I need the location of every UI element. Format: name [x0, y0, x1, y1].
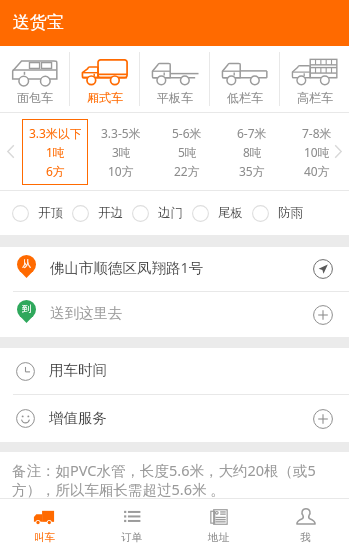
- staticText: 增值服务: [49, 409, 297, 427]
- button[interactable]: 叫车: [0, 499, 88, 550]
- button[interactable]: Previous sizes: [0, 113, 22, 190]
- button[interactable]: 厢式车: [70, 46, 139, 112]
- staticText: 低栏车: [227, 90, 263, 105]
- staticText: 8吨: [243, 144, 262, 160]
- staticText: 3吨: [112, 144, 131, 160]
- button[interactable]: 面包车: [0, 46, 69, 112]
- button[interactable]: Locate: [297, 247, 349, 291]
- staticText: 5-6米: [172, 125, 202, 141]
- button[interactable]: 低栏车: [210, 46, 279, 112]
- staticText: 开边: [98, 205, 123, 221]
- staticText: 尾板: [218, 205, 243, 221]
- staticText: 送货宝: [13, 12, 64, 33]
- button[interactable]: 开顶: [12, 191, 72, 235]
- button[interactable]: 6-7米: [219, 113, 284, 190]
- button[interactable]: 地址: [175, 499, 262, 550]
- staticText: 从: [22, 258, 32, 270]
- button[interactable]: 开边: [72, 191, 132, 235]
- button[interactable]: 3.3-5米: [88, 113, 154, 190]
- staticText: 厢式车: [87, 90, 123, 105]
- staticText: 5吨: [178, 144, 197, 160]
- button[interactable]: 用车时间: [0, 348, 349, 394]
- staticText: 防雨: [278, 205, 303, 221]
- button[interactable]: 高栏车: [280, 46, 349, 112]
- staticText: 35方: [239, 163, 265, 179]
- staticText: 地址: [208, 531, 229, 544]
- staticText: 边门: [158, 205, 183, 221]
- button[interactable]: 7-8米: [284, 113, 349, 190]
- staticText: 平板车: [157, 90, 193, 105]
- button[interactable]: Add destination: [297, 292, 349, 337]
- staticText: 6-7米: [237, 125, 267, 141]
- staticText: 送到这里去: [50, 304, 297, 322]
- staticText: 7-8米: [302, 125, 332, 141]
- staticText: 用车时间: [49, 361, 297, 379]
- button[interactable]: 5-6米: [154, 113, 219, 190]
- button[interactable]: 尾板: [192, 191, 252, 235]
- button[interactable]: 增值服务: [0, 395, 349, 442]
- staticText: 6方: [46, 163, 65, 179]
- staticText: 订单: [121, 531, 142, 544]
- button[interactable]: 3.3米以下: [22, 113, 88, 190]
- button[interactable]: 订单: [88, 499, 175, 550]
- staticText: 佛山市顺德区凤翔路1号: [50, 257, 297, 277]
- staticText: 备注：如PVC水管，长度5.6米，大约20根（或5方），所以车厢长需超过5.6米…: [12, 460, 338, 498]
- button[interactable]: 防雨: [252, 191, 312, 235]
- staticText: 开顶: [38, 205, 63, 221]
- button[interactable]: 边门: [132, 191, 192, 235]
- button[interactable]: Add service: [297, 395, 349, 442]
- staticText: 面包车: [17, 90, 53, 105]
- staticText: 3.3米以下: [29, 125, 81, 141]
- staticText: 10吨: [304, 144, 330, 160]
- button[interactable]: More sizes: [327, 113, 349, 190]
- staticText: 1吨: [46, 144, 65, 160]
- button[interactable]: 到: [0, 292, 349, 337]
- button[interactable]: 我: [262, 499, 349, 550]
- staticText: 我: [300, 531, 311, 544]
- button[interactable]: 从: [0, 247, 349, 291]
- staticText: 40方: [304, 163, 330, 179]
- button[interactable]: 平板车: [140, 46, 209, 112]
- staticText: 22方: [174, 163, 200, 179]
- staticText: 3.3-5米: [101, 125, 141, 141]
- staticText: 到: [22, 303, 32, 315]
- staticText: 高栏车: [297, 90, 333, 105]
- staticText: 10方: [108, 163, 134, 179]
- staticText: 叫车: [34, 531, 55, 544]
